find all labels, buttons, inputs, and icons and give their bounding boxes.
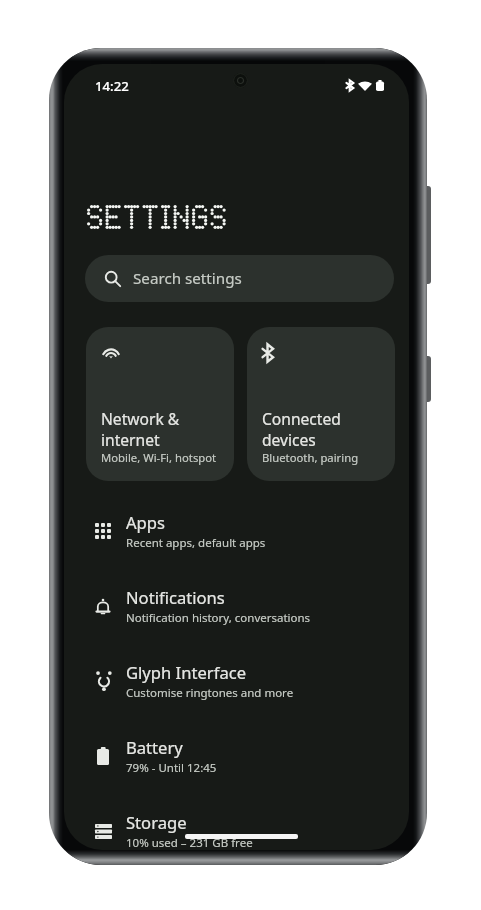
staticText: Recent apps, default apps bbox=[126, 535, 266, 551]
button[interactable]: Apps bbox=[64, 493, 409, 568]
button[interactable]: Search settings bbox=[85, 255, 394, 302]
staticText: 14:22 bbox=[95, 77, 129, 95]
staticText: Apps bbox=[126, 511, 165, 534]
staticText: 79% - Until 12:45 bbox=[126, 760, 217, 776]
staticText: Connected devices bbox=[262, 408, 341, 450]
staticText: Mobile, Wi-Fi, hotspot bbox=[101, 450, 217, 465]
staticText: Notifications bbox=[126, 586, 225, 609]
button[interactable]: Notifications bbox=[64, 568, 409, 643]
staticText: Battery bbox=[126, 736, 183, 759]
button[interactable]: Battery bbox=[64, 718, 409, 793]
staticText: Notification history, conversations bbox=[126, 610, 311, 626]
staticText: 10% used – 231 GB free bbox=[126, 835, 253, 850]
button[interactable]: Connected devices bbox=[247, 327, 395, 481]
staticText: Glyph Interface bbox=[126, 661, 247, 684]
button[interactable]: Network & internet bbox=[86, 327, 234, 481]
staticText: Storage bbox=[126, 811, 187, 834]
button[interactable]: Glyph Interface bbox=[64, 643, 409, 718]
staticText: Bluetooth, pairing bbox=[262, 450, 359, 465]
button[interactable]: Storage bbox=[64, 793, 409, 850]
staticText: Search settings bbox=[133, 268, 242, 289]
staticText: Network & internet bbox=[101, 408, 180, 450]
staticText: Customise ringtones and more bbox=[126, 685, 294, 701]
